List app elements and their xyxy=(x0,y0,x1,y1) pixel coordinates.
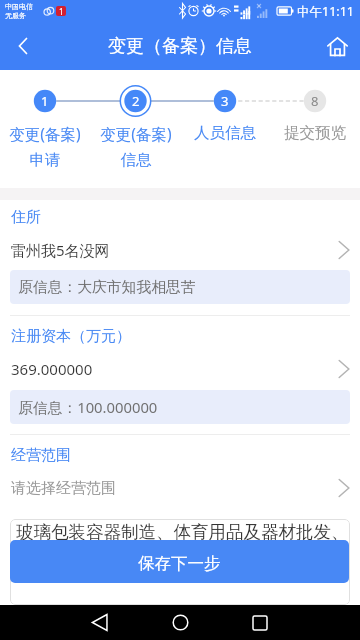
button[interactable]: Back xyxy=(80,605,120,640)
button[interactable]: Recents xyxy=(240,605,280,640)
button[interactable]: 提交预览 xyxy=(270,123,360,173)
button[interactable]: 变更(备案) 申请 xyxy=(0,123,90,173)
staticText: 3 xyxy=(221,92,229,110)
button[interactable]: 人员信息 xyxy=(180,123,270,173)
button[interactable]: 保存下一步 xyxy=(10,540,349,583)
staticText: 变更(备案) 信息 xyxy=(100,123,172,170)
staticText: 2 xyxy=(132,92,140,110)
staticText: 经营范围 xyxy=(11,446,71,465)
button[interactable]: 369.000000 xyxy=(0,353,360,385)
staticText: 369.000000 xyxy=(11,359,93,379)
staticText: 1 xyxy=(41,92,49,110)
button[interactable]: 玻璃包装容器制造、体育用品及器材批发、 xyxy=(10,519,350,605)
staticText: 变更(备案) 申请 xyxy=(9,123,81,170)
staticText: 中国电信 xyxy=(5,2,33,11)
staticText: 保存下一步 xyxy=(138,553,221,574)
staticText: 提交预览 xyxy=(284,123,346,143)
button[interactable]: 变更(备案) 信息 xyxy=(91,123,181,173)
staticText: 注册资本（万元） xyxy=(11,327,131,346)
staticText: 请选择经营范围 xyxy=(11,479,116,498)
staticText: 玻璃包装容器制造、体育用品及器材批发、 xyxy=(16,521,349,543)
staticText: 住所 xyxy=(11,208,41,227)
staticText: 雷州我5名没网 xyxy=(11,240,110,260)
staticText: 8 xyxy=(311,92,319,110)
button[interactable]: 雷州我5名没网 xyxy=(0,234,360,266)
staticText: 人员信息 xyxy=(194,123,256,143)
staticText: 1 xyxy=(59,6,64,16)
staticText: 原信息：100.000000 xyxy=(18,397,158,417)
button[interactable]: Home xyxy=(160,605,200,640)
staticText: 变更（备案）信息 xyxy=(108,35,252,58)
staticText: 原信息：大庆市知我相思苦 xyxy=(18,278,196,297)
staticText: 中午11:11 xyxy=(297,3,354,20)
button[interactable]: 请选择经营范围 xyxy=(0,472,360,504)
button[interactable]: Back xyxy=(0,23,46,69)
button[interactable]: Home xyxy=(314,23,360,69)
staticText: 无服务 xyxy=(5,11,26,20)
